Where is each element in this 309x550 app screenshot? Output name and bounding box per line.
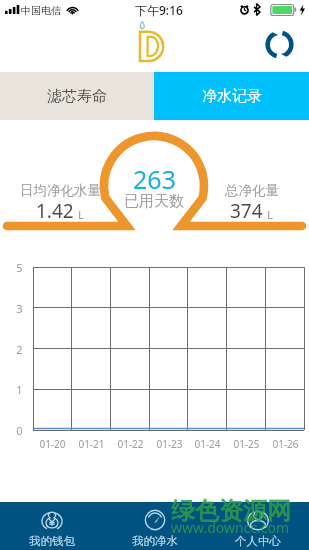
staticText: 5 <box>16 260 23 275</box>
staticText: 下午9:16 <box>135 2 183 18</box>
staticText: 我的钱包 <box>29 534 75 548</box>
staticText: www.downcc.com <box>171 518 290 537</box>
button[interactable]: 我的钱包 <box>0 502 103 550</box>
staticText: 净水记录 <box>202 87 262 106</box>
button[interactable]: Refresh <box>263 28 295 60</box>
staticText: L <box>267 207 274 223</box>
staticText: 3 <box>16 301 23 316</box>
staticText: 绿色资源网 <box>171 496 291 526</box>
staticText: 我的净水 <box>132 534 178 548</box>
staticText: 01-20 <box>39 437 66 451</box>
staticText: L <box>78 207 85 223</box>
staticText: 个人中心 <box>235 534 281 548</box>
staticText: 滤芯寿命 <box>47 87 107 106</box>
staticText: 01-23 <box>156 437 183 451</box>
button[interactable]: 个人中心 <box>206 502 309 550</box>
staticText: 374 <box>230 198 263 224</box>
staticText: 263 <box>133 162 176 196</box>
button[interactable]: 我的净水 <box>103 502 206 550</box>
staticText: 总净化量 <box>225 182 279 199</box>
staticText: 2 <box>16 342 23 357</box>
staticText: 1.42 <box>36 198 74 224</box>
staticText: 已用天数 <box>124 192 184 211</box>
staticText: 01-22 <box>117 437 144 451</box>
button[interactable]: 滤芯寿命 <box>0 72 154 120</box>
staticText: 0 <box>16 423 23 438</box>
staticText: 日均净化水量 <box>20 182 101 199</box>
staticText: 01-21 <box>78 437 105 451</box>
staticText: 01-26 <box>272 437 299 451</box>
button[interactable]: 净水记录 <box>154 72 309 120</box>
staticText: 1 <box>16 382 23 397</box>
staticText: 01-24 <box>194 437 221 451</box>
staticText: 01-25 <box>233 437 260 451</box>
staticText: 中国电信 <box>21 4 61 17</box>
